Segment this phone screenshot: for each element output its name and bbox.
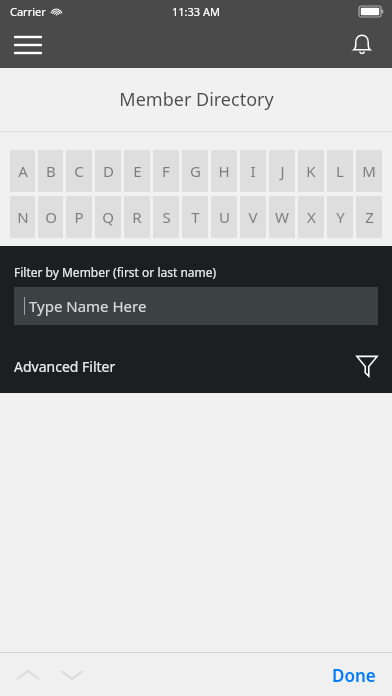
- staticText: T: [191, 207, 200, 227]
- button[interactable]: W: [269, 196, 295, 238]
- button[interactable]: N: [10, 196, 35, 238]
- button[interactable]: Advanced Filter: [14, 349, 378, 383]
- button[interactable]: Done: [324, 655, 384, 695]
- button[interactable]: G: [182, 150, 208, 192]
- staticText: B: [46, 161, 56, 181]
- staticText: Advanced Filter: [14, 357, 116, 376]
- staticText: J: [280, 161, 285, 181]
- staticText: I: [250, 161, 256, 181]
- button[interactable]: Next field: [50, 655, 94, 695]
- button[interactable]: Menu: [4, 22, 52, 68]
- button[interactable]: H: [211, 150, 237, 192]
- button[interactable]: K: [298, 150, 324, 192]
- button[interactable]: M: [356, 150, 382, 192]
- button[interactable]: V: [240, 196, 266, 238]
- staticText: N: [17, 207, 29, 227]
- staticText: Q: [102, 207, 114, 227]
- staticText: U: [219, 207, 230, 227]
- staticText: C: [74, 161, 84, 181]
- button[interactable]: F: [153, 150, 179, 192]
- staticText: G: [190, 161, 201, 181]
- staticText: L: [336, 161, 344, 181]
- button[interactable]: X: [298, 196, 324, 238]
- button[interactable]: L: [327, 150, 353, 192]
- staticText: Carrier: [10, 4, 46, 19]
- staticText: 11:33 AM: [172, 4, 220, 19]
- staticText: F: [162, 161, 170, 181]
- staticText: K: [306, 161, 316, 181]
- button[interactable]: R: [124, 196, 150, 238]
- button[interactable]: O: [38, 196, 63, 238]
- staticText: D: [103, 161, 114, 181]
- button[interactable]: P: [66, 196, 92, 238]
- button[interactable]: Q: [95, 196, 121, 238]
- staticText: M: [362, 161, 376, 181]
- staticText: Type Name Here: [29, 296, 147, 316]
- staticText: E: [133, 161, 142, 181]
- staticText: O: [45, 207, 57, 227]
- button[interactable]: A: [10, 150, 35, 192]
- button[interactable]: C: [66, 150, 92, 192]
- staticText: R: [132, 207, 142, 227]
- staticText: A: [18, 161, 28, 181]
- button[interactable]: Type Name Here: [14, 287, 378, 325]
- staticText: Z: [365, 207, 374, 227]
- button[interactable]: I: [240, 150, 266, 192]
- staticText: Y: [336, 207, 345, 227]
- button[interactable]: J: [269, 150, 295, 192]
- staticText: Filter by Member (first or last name): [14, 264, 217, 280]
- button[interactable]: Previous field: [6, 655, 50, 695]
- staticText: V: [248, 207, 258, 227]
- staticText: X: [307, 207, 316, 227]
- button[interactable]: U: [211, 196, 237, 238]
- button[interactable]: S: [153, 196, 179, 238]
- staticText: Done: [332, 664, 376, 687]
- staticText: H: [218, 161, 230, 181]
- staticText: S: [162, 207, 171, 227]
- button[interactable]: T: [182, 196, 208, 238]
- button[interactable]: E: [124, 150, 150, 192]
- button[interactable]: B: [38, 150, 63, 192]
- button[interactable]: D: [95, 150, 121, 192]
- button[interactable]: Y: [327, 196, 353, 238]
- button[interactable]: Notifications: [338, 22, 386, 68]
- staticText: W: [275, 207, 289, 227]
- staticText: P: [74, 207, 84, 227]
- staticText: Member Directory: [119, 87, 274, 112]
- button[interactable]: Z: [356, 196, 382, 238]
